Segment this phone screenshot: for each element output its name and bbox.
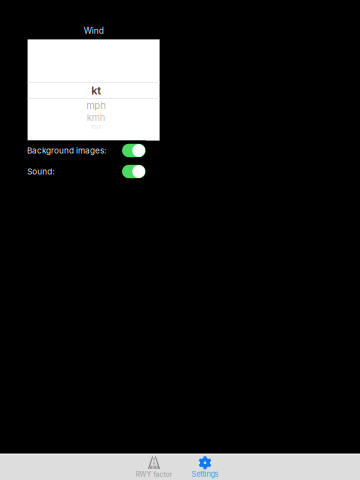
button[interactable]: Settings [168,453,242,480]
staticText: m/s [91,123,101,130]
button[interactable]: Sound: [28,161,146,181]
staticText: Sound: [27,167,54,176]
staticText: kmh [87,112,106,123]
button[interactable]: Background images: [28,140,146,160]
staticText: mph [86,100,106,111]
staticText: RWY factor [135,470,172,478]
staticText: kt [91,84,101,97]
staticText: Background images: [27,146,106,155]
staticText: Settings [191,470,218,479]
button[interactable]: RWY factor [117,453,191,480]
staticText: Wind [84,25,104,36]
